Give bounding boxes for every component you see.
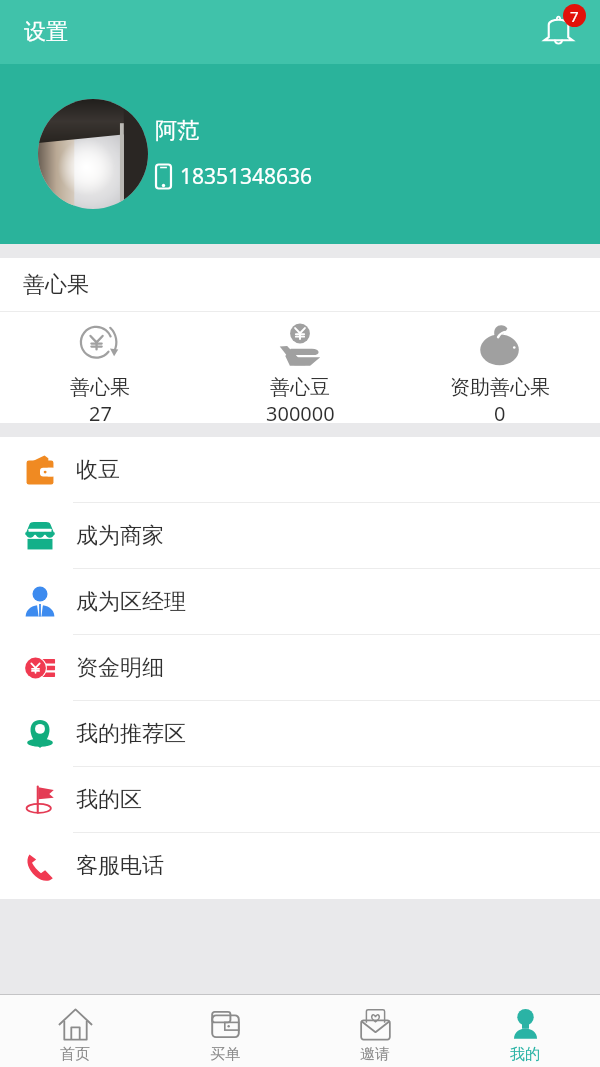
button[interactable]: 我的区 — [0, 767, 600, 833]
staticText: 0 — [494, 400, 506, 423]
button[interactable]: 买单 — [150, 1004, 300, 1067]
staticText: 我的推荐区 — [76, 720, 186, 748]
button[interactable]: 收豆 — [0, 437, 600, 503]
button[interactable]: 客服电话 — [0, 833, 600, 899]
button[interactable]: 首页 — [0, 1004, 150, 1067]
button[interactable]: 设置 — [24, 18, 68, 46]
staticText: 资助善心果 — [450, 375, 550, 400]
button[interactable]: Notifications — [532, 4, 588, 60]
staticText: 资金明细 — [76, 654, 164, 682]
button[interactable]: 资金明细 — [0, 635, 600, 701]
button[interactable]: 成为商家 — [0, 503, 600, 569]
staticText: 我的区 — [76, 786, 142, 814]
staticText: 善心果 — [23, 271, 89, 299]
staticText: 买单 — [210, 1045, 240, 1064]
button[interactable]: 善心豆 — [200, 322, 400, 423]
staticText: 我的 — [510, 1045, 540, 1064]
button[interactable]: 我的 — [450, 1004, 600, 1067]
staticText: 成为区经理 — [76, 588, 186, 616]
staticText: 27 — [89, 400, 112, 423]
button[interactable]: 阿范 — [0, 64, 600, 244]
staticText: 邀请 — [360, 1045, 390, 1064]
staticText: 18351348636 — [180, 162, 313, 191]
staticText: 收豆 — [76, 456, 120, 484]
button[interactable]: 善心果 — [0, 322, 200, 423]
button[interactable]: 成为区经理 — [0, 569, 600, 635]
button[interactable]: 资助善心果 — [400, 322, 600, 423]
staticText: 7 — [570, 6, 579, 26]
staticText: 阿范 — [155, 117, 199, 145]
staticText: 成为商家 — [76, 522, 164, 550]
button[interactable]: 我的推荐区 — [0, 701, 600, 767]
staticText: 善心果 — [70, 375, 130, 400]
button[interactable]: 善心果 — [0, 258, 600, 311]
staticText: 善心豆 — [270, 375, 330, 400]
staticText: 首页 — [60, 1045, 90, 1064]
button[interactable]: 邀请 — [300, 1004, 450, 1067]
staticText: 300000 — [266, 400, 335, 423]
staticText: 客服电话 — [76, 852, 164, 880]
